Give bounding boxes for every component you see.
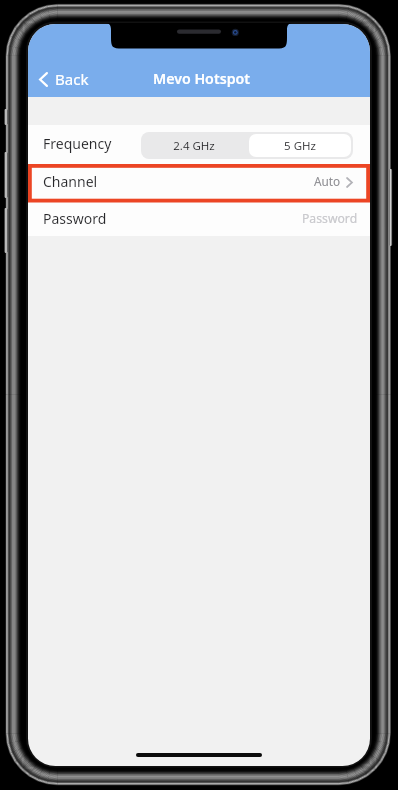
staticText: Password (43, 209, 107, 228)
staticText: 5 GHz (284, 138, 316, 154)
staticText: Mevo Hotspot (153, 69, 251, 88)
staticText: Frequency (43, 134, 112, 153)
staticText: Channel (43, 172, 98, 191)
staticText: 2.4 GHz (173, 138, 215, 154)
button[interactable]: Channel (28, 166, 370, 201)
staticText: Back (55, 69, 89, 90)
button[interactable]: Back (28, 66, 99, 92)
button[interactable]: 5 GHz (249, 134, 351, 157)
staticText: Password (302, 210, 358, 227)
button[interactable]: 2.4 GHz (141, 132, 247, 159)
staticText: Auto (314, 173, 341, 189)
button[interactable]: Password (28, 202, 370, 236)
